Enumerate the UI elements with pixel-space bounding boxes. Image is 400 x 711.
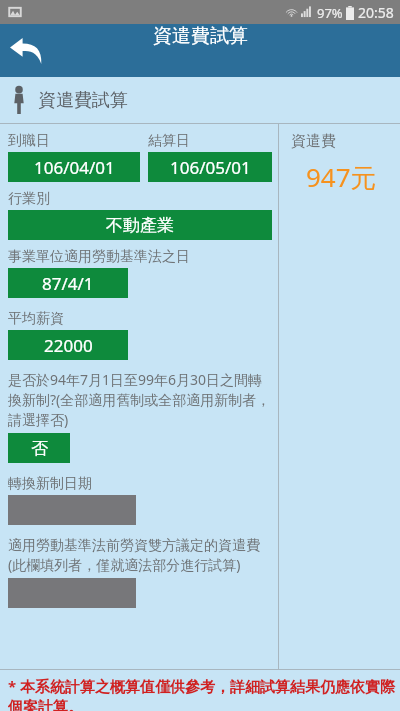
staticText: 平均薪資 (8, 310, 64, 328)
button[interactable]: 106/05/01 (148, 152, 272, 182)
staticText: 20:58 (358, 3, 394, 22)
staticText: 行業別 (8, 190, 50, 208)
staticText: 適用勞動基準法前勞資雙方議定的資遣費(此欄填列者，僅就適法部分進行試算) (8, 537, 272, 574)
staticText: * 本系統計算之概算值僅供參考，詳細試算結果仍應依實際個案計算。 (8, 676, 396, 711)
staticText: 22000 (44, 334, 93, 357)
staticText: 到職日 (8, 132, 50, 150)
staticText: 不動產業 (106, 215, 174, 236)
staticText: 資遣費試算 (38, 89, 128, 112)
staticText: 結算日 (148, 132, 190, 150)
staticText: 資遣費試算 (153, 24, 248, 48)
staticText: 是否於94年7月1日至99年6月30日之間轉換新制?(全部適用舊制或全部適用新制… (8, 370, 272, 429)
staticText: 947元 (306, 159, 377, 195)
staticText: 資遣費 (291, 132, 336, 151)
button[interactable]: 22000 (8, 330, 128, 360)
staticText: 87/4/1 (42, 272, 94, 295)
button[interactable]: 106/04/01 (8, 152, 140, 182)
staticText: 97% (317, 4, 343, 22)
staticText: 轉換新制日期 (8, 475, 92, 493)
staticText: 否 (31, 438, 48, 459)
button[interactable]: 87/4/1 (8, 268, 128, 298)
staticText: 106/05/01 (170, 156, 251, 179)
button[interactable]: 否 (8, 433, 70, 463)
button[interactable]: Back (0, 25, 52, 77)
staticText: 事業單位適用勞動基準法之日 (8, 248, 190, 266)
button[interactable]: 不動產業 (8, 210, 272, 240)
staticText: 106/04/01 (34, 156, 115, 179)
